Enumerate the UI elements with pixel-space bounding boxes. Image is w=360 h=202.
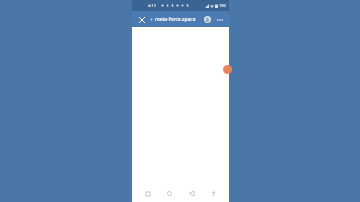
button[interactable]: More options: [214, 14, 225, 25]
button[interactable]: Support chat: [223, 65, 232, 74]
button[interactable]: Keyboard: [207, 187, 220, 200]
button[interactable]: Home: [163, 187, 176, 200]
staticText: meta-force.space: [155, 16, 196, 23]
button[interactable]: Close: [136, 14, 147, 25]
staticText: 100: [219, 3, 226, 8]
button[interactable]: Back: [185, 187, 198, 200]
button[interactable]: Account: [202, 14, 213, 25]
staticText: 4:11: [148, 3, 156, 8]
button[interactable]: meta-force.space: [149, 13, 200, 25]
button[interactable]: Recent apps: [141, 187, 154, 200]
